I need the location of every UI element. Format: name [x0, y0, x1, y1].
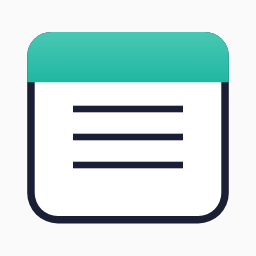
button[interactable]: Notes [0, 0, 256, 256]
